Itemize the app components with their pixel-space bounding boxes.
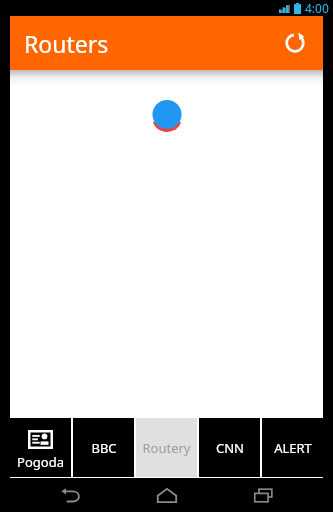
staticText: Routery [142,439,191,457]
button[interactable]: BBC [73,418,134,477]
button[interactable]: Recent apps [236,478,290,512]
staticText: 4:00 [305,0,329,16]
staticText: ALERT [274,439,312,457]
button[interactable]: Routery [136,418,197,477]
button[interactable]: Back [43,478,97,512]
button[interactable]: ALERT [262,418,323,477]
staticText: Pogoda [17,453,64,471]
staticText: CNN [216,439,244,457]
button[interactable]: Refresh [273,21,317,65]
button[interactable]: Pogoda [10,418,71,477]
button[interactable]: Home [140,478,194,512]
staticText: Routers [24,28,109,59]
staticText: BBC [91,439,117,457]
button[interactable]: CNN [199,418,260,477]
